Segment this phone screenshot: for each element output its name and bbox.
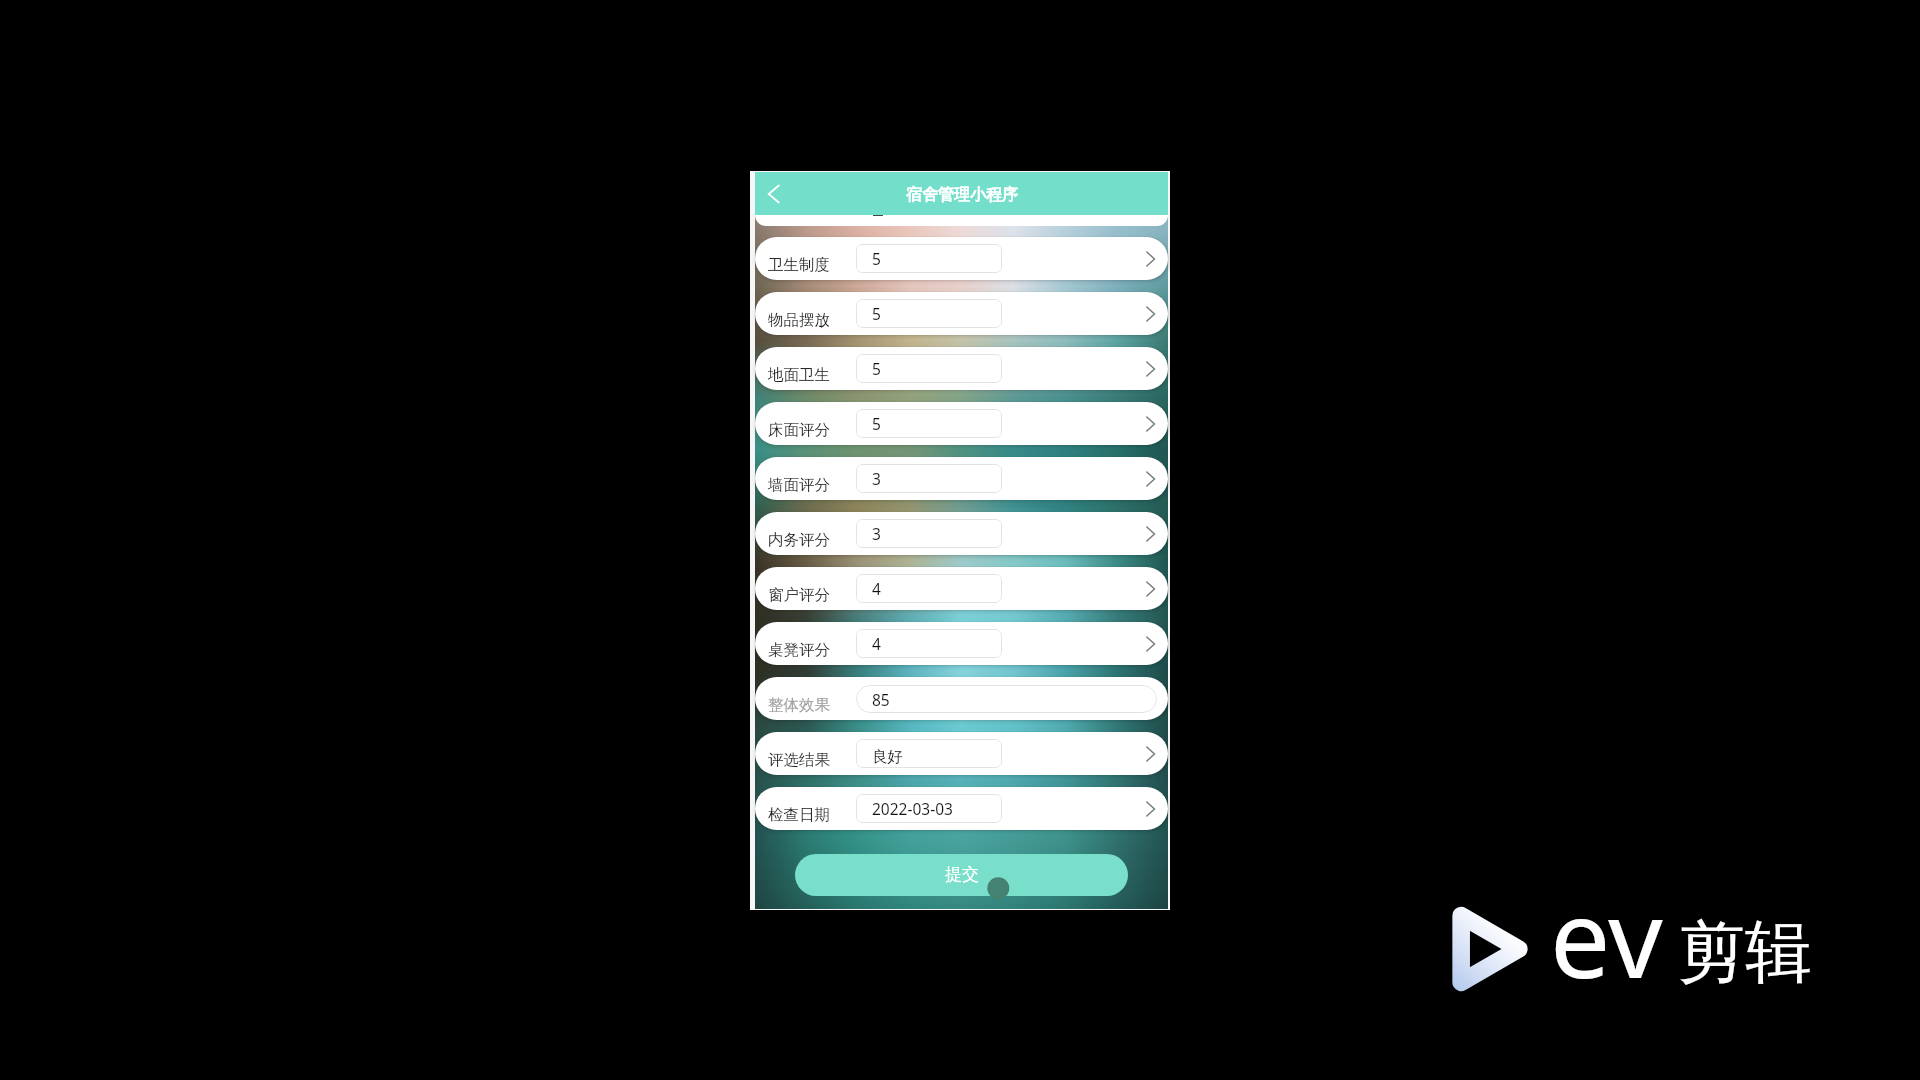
staticText: 4: [872, 633, 881, 654]
staticText: 剪辑: [1678, 910, 1812, 994]
staticText: 4: [872, 578, 881, 599]
staticText: 3: [872, 523, 881, 544]
staticText: 2022-03-03: [872, 798, 953, 819]
button[interactable]: 桌凳评分: [755, 622, 1168, 665]
staticText: 桌凳评分: [768, 640, 830, 660]
staticText: ev: [1550, 864, 1663, 1010]
button[interactable]: 窗户评分: [755, 567, 1168, 610]
staticText: 评选结果: [768, 750, 830, 770]
staticText: 5: [872, 303, 881, 324]
button[interactable]: 提交: [795, 854, 1128, 896]
staticText: 墙面评分: [768, 475, 830, 495]
staticText: 窗户评分: [768, 585, 830, 605]
staticText: 提交: [945, 864, 979, 885]
staticText: 物品摆放: [768, 310, 830, 330]
button[interactable]: 床面评分: [755, 402, 1168, 445]
staticText: 床面评分: [768, 420, 830, 440]
staticText: 整体效果: [768, 695, 830, 715]
button[interactable]: 评选结果: [755, 732, 1168, 775]
button[interactable]: 整体效果: [755, 677, 1168, 720]
button[interactable]: 卫生制度: [755, 237, 1168, 280]
staticText: 5: [872, 358, 881, 379]
staticText: 5: [872, 248, 881, 269]
button[interactable]: Back: [757, 177, 791, 211]
staticText: 良好: [872, 747, 903, 767]
button[interactable]: 墙面评分: [755, 457, 1168, 500]
button[interactable]: 内务评分: [755, 512, 1168, 555]
button[interactable]: 物品摆放: [755, 292, 1168, 335]
staticText: 3: [872, 468, 881, 489]
staticText: 卫生制度: [768, 255, 830, 275]
staticText: 检查日期: [768, 805, 830, 825]
button[interactable]: 地面卫生: [755, 347, 1168, 390]
staticText: 内务评分: [768, 530, 830, 550]
staticText: 宿舍管理小程序: [906, 185, 1018, 205]
button[interactable]: 检查日期: [755, 787, 1168, 830]
staticText: 85: [872, 689, 890, 710]
staticText: 5: [872, 413, 881, 434]
staticText: 地面卫生: [768, 365, 830, 385]
